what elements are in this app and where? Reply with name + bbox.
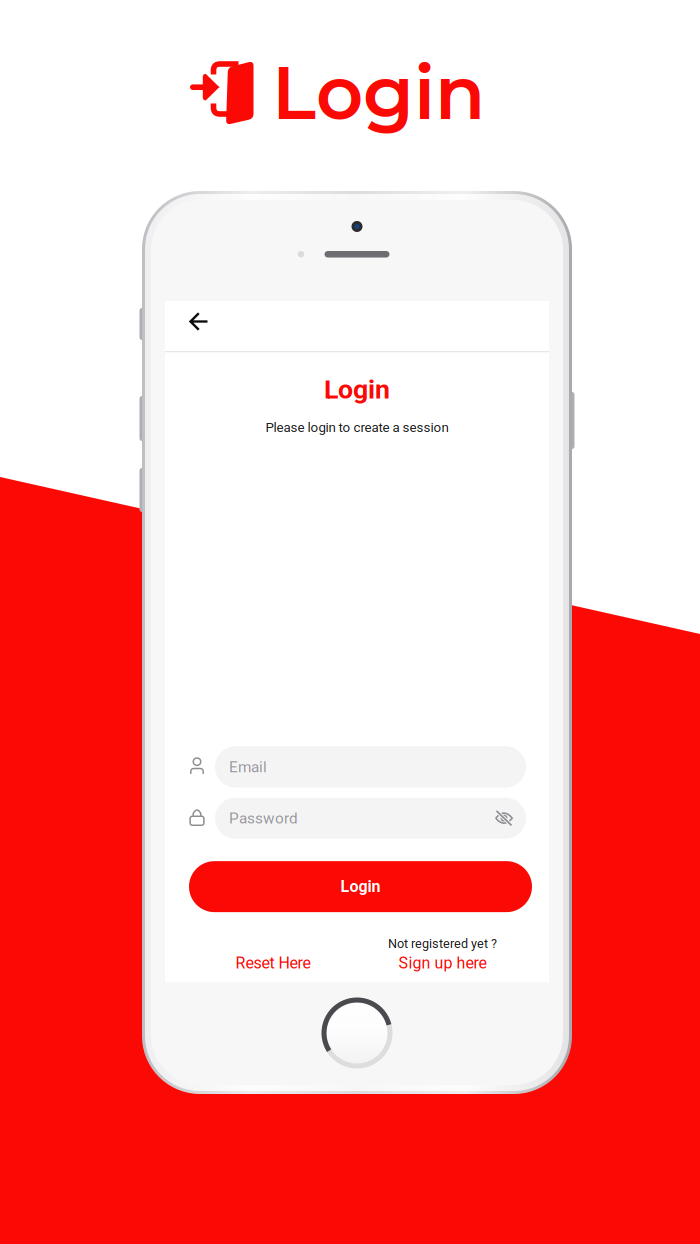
staticText: Reset Here	[235, 954, 310, 972]
button[interactable]: Login	[189, 861, 532, 912]
staticText: Please login to create a session	[265, 420, 448, 435]
button[interactable]: Sign up here	[398, 953, 486, 973]
button[interactable]: Reset Here	[198, 953, 348, 973]
staticText: Login	[324, 374, 390, 405]
staticText: Sign up here	[398, 954, 486, 972]
staticText: Password	[229, 809, 298, 827]
button[interactable]: Show password	[491, 805, 517, 831]
staticText: Not registered yet ?	[388, 936, 497, 951]
staticText: Login	[272, 48, 485, 137]
staticText: Email	[229, 758, 267, 776]
button[interactable]: Back	[178, 301, 220, 350]
staticText: Login	[340, 877, 380, 896]
